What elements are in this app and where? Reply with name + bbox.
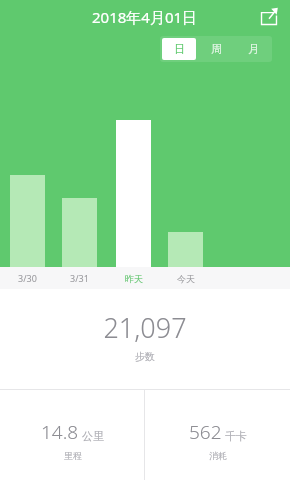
staticText: 2018年4月01日 [92, 7, 198, 27]
staticText: 月 [248, 42, 259, 56]
button[interactable]: Share [258, 6, 280, 28]
button[interactable]: 月 [237, 38, 270, 60]
staticText: 千卡 [225, 429, 247, 443]
staticText: 14.8 [41, 419, 79, 445]
staticText: 公里 [82, 429, 104, 443]
staticText: 里程 [64, 450, 82, 461]
staticText: 消耗 [209, 450, 227, 461]
staticText: 562 [189, 419, 222, 445]
button[interactable]: 562 [145, 390, 290, 480]
button[interactable]: 日 [162, 38, 196, 60]
staticText: 21,097 [103, 309, 187, 346]
staticText: 日 [174, 42, 185, 56]
staticText: 昨天 [125, 273, 143, 284]
staticText: 步数 [135, 350, 155, 363]
staticText: 3/30 [18, 272, 37, 284]
staticText: 3/31 [70, 272, 89, 284]
button[interactable]: 14.8 [0, 390, 144, 480]
staticText: 周 [211, 42, 222, 56]
staticText: 今天 [177, 273, 195, 284]
button[interactable]: 周 [200, 38, 233, 60]
